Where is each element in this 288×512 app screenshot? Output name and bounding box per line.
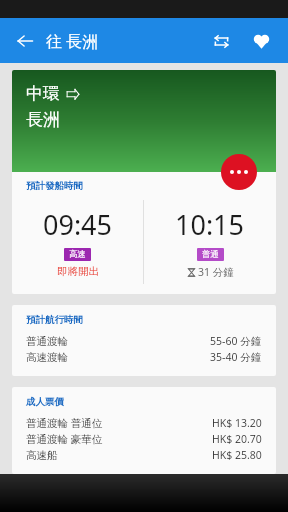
staticText: 10:15	[175, 206, 245, 243]
staticText: 高速船	[26, 449, 58, 462]
button[interactable]: Favourite	[244, 24, 278, 58]
staticText: 31 分鐘	[198, 265, 234, 279]
staticText: 55-60 分鐘	[210, 334, 262, 348]
button[interactable]: 中環	[12, 70, 276, 172]
button[interactable]: More options	[221, 154, 257, 190]
button[interactable]: 10:15	[144, 200, 276, 284]
button[interactable]: Back	[8, 24, 42, 58]
staticText: 預計航行時間	[26, 314, 83, 326]
staticText: 普通渡輪 豪華位	[26, 432, 103, 446]
staticText: 09:45	[43, 206, 113, 243]
staticText: 中環	[26, 83, 60, 104]
staticText: 高速	[69, 249, 86, 260]
button[interactable]: 高速船	[26, 447, 262, 463]
staticText: 預計發船時間	[26, 180, 83, 192]
staticText: HK$ 25.80	[212, 448, 262, 462]
staticText: 普通渡輪	[26, 335, 68, 348]
button[interactable]: 09:45	[12, 200, 143, 284]
button[interactable]: 高速渡輪	[26, 349, 262, 365]
staticText: HK$ 13.20	[212, 416, 262, 430]
staticText: 普通渡輪 普通位	[26, 416, 103, 430]
button[interactable]: 普通渡輪	[26, 333, 262, 349]
staticText: 往 長洲	[46, 30, 99, 52]
staticText: HK$ 20.70	[212, 432, 262, 446]
staticText: 長洲	[26, 109, 60, 130]
staticText: 35-40 分鐘	[210, 350, 262, 364]
button[interactable]: Reverse direction	[204, 24, 238, 58]
staticText: 即將開出	[57, 265, 99, 278]
button[interactable]: 普通渡輪 豪華位	[26, 431, 262, 447]
staticText: 高速渡輪	[26, 351, 68, 364]
staticText: 成人票價	[26, 396, 64, 408]
button[interactable]: 普通渡輪 普通位	[26, 415, 262, 431]
staticText: 普通	[202, 249, 219, 260]
